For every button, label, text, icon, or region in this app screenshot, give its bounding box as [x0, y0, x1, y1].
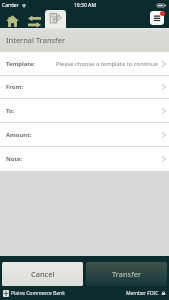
button[interactable]: Note:: [0, 147, 169, 171]
button[interactable]: Transfers: [26, 12, 42, 28]
button[interactable]: Messages: [45, 10, 66, 28]
staticText: Member FDIC: [126, 290, 159, 297]
staticText: Plains Commerce Bank: [11, 290, 65, 297]
staticText: Amount:: [6, 131, 32, 139]
staticText: 10:30 AM: [74, 2, 96, 9]
button[interactable]: From:: [0, 76, 169, 98]
staticText: Internal Transfer: [6, 35, 66, 45]
staticText: Template:: [6, 60, 35, 68]
staticText: Cancel: [31, 269, 55, 279]
staticText: Transfer: [112, 269, 142, 279]
staticText: From:: [6, 83, 23, 91]
button[interactable]: Cancel: [2, 262, 83, 286]
button[interactable]: Template:: [0, 52, 169, 75]
button[interactable]: Menu: [150, 11, 164, 25]
button[interactable]: To:: [0, 99, 169, 122]
button[interactable]: Amount:: [0, 123, 169, 146]
staticText: Carrier: [2, 2, 19, 9]
staticText: Please choose a template to continue: [56, 60, 158, 68]
button[interactable]: Transfer: [86, 262, 167, 286]
staticText: Note:: [6, 155, 23, 163]
button[interactable]: Home: [4, 12, 21, 28]
staticText: To:: [6, 107, 15, 115]
